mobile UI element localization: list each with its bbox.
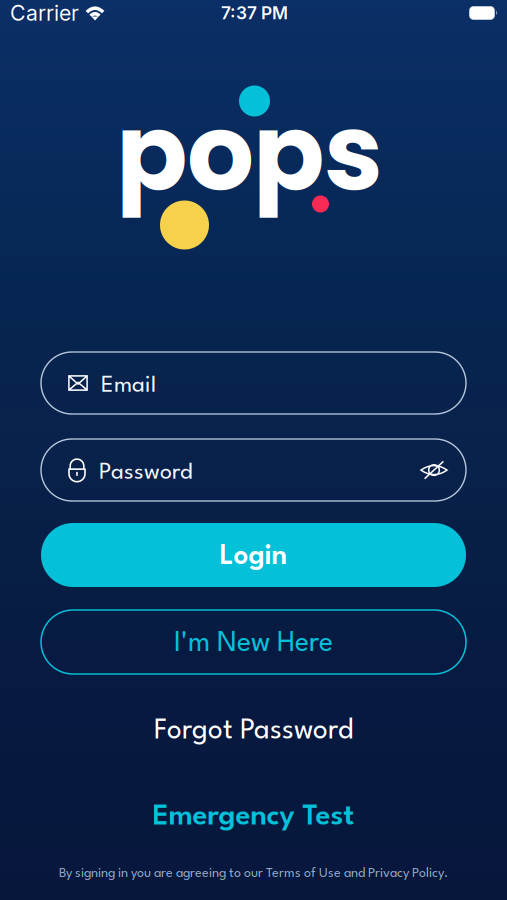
staticText: Email <box>101 375 156 397</box>
staticText: Forgot Password <box>154 718 353 745</box>
staticText: I'm New Here <box>174 630 333 657</box>
staticText: Login <box>219 543 287 570</box>
button[interactable]: Show password <box>420 460 448 479</box>
button[interactable]: I'm New Here <box>41 610 466 674</box>
staticText: Carrier <box>10 0 79 26</box>
button[interactable]: Login <box>41 523 466 587</box>
staticText: Emergency Test <box>152 803 354 831</box>
button[interactable]: Emergency Test <box>138 799 368 835</box>
staticText: By signing in you are agreeing to our Te… <box>59 867 448 880</box>
staticText: 7:37 PM <box>221 2 288 23</box>
button[interactable]: Forgot Password <box>140 714 367 749</box>
staticText: pops <box>116 79 383 227</box>
staticText: Password <box>99 462 193 484</box>
